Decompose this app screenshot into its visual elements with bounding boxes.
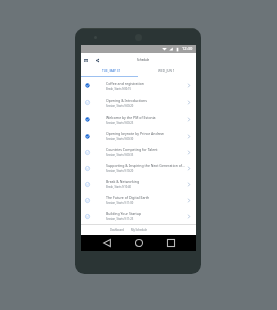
button[interactable]: Break & Networking [81,176,196,192]
staticText: Dashboard [110,228,124,232]
button[interactable]: Opening keynote by Prince Andrew [81,128,196,144]
staticText: Break, Starts 9:00:15 [106,87,131,91]
button[interactable]: Welcome by the PM of Estonia [81,111,196,128]
button[interactable]: Share [94,53,100,65]
staticText: Welcome by the PM of Estonia [106,115,156,120]
staticText: Schedule [137,58,150,62]
staticText: Countries Competing for Talent [106,147,158,152]
button[interactable]: WED, JUN 1 [138,65,196,76]
staticText: Session, Starts 9:10:20 [106,169,134,173]
staticText: Session, Starts 9:00:30 [106,137,134,141]
button[interactable]: TUE, MAY 31 [81,65,138,76]
button[interactable]: Building Your Startup [81,208,196,224]
button[interactable]: Coffee and registration [81,77,196,94]
staticText: Break, Starts 9:10:40 [106,185,131,189]
staticText: Opening & Introductions [106,98,147,103]
button[interactable]: Agenda view [82,53,90,65]
staticText: My Schedule [131,228,147,232]
button[interactable]: Home [131,235,147,251]
button[interactable]: My Schedule [127,225,151,235]
button[interactable]: Recent apps [163,235,179,251]
staticText: WED, JUN 1 [158,69,175,73]
staticText: 12:30 [182,46,193,52]
staticText: Building Your Startup [106,211,142,216]
button[interactable]: Dashboard [106,225,127,235]
button[interactable]: Opening & Introductions [81,94,196,111]
staticText: Break & Networking [106,179,140,184]
staticText: Session, Starts 9:11:00 [106,201,134,205]
staticText: Coffee and registration [106,81,144,86]
staticText: Session, Starts 9:00:35 [106,153,134,157]
button[interactable]: Back [99,235,115,251]
staticText: Opening keynote by Prince Andrew [106,131,164,136]
staticText: TUE, MAY 31 [102,69,121,73]
staticText: Supporting & Inspiring the Next Generati… [106,163,185,168]
button[interactable]: The Future of Digital Earth [81,192,196,208]
staticText: The Future of Digital Earth [106,195,150,200]
staticText: Session, Starts 9:11:25 [106,217,134,221]
button[interactable]: Countries Competing for Talent [81,144,196,160]
staticText: Session, Starts 9:00:25 [106,121,134,125]
staticText: Session, Starts 9:00:20 [106,104,134,108]
button[interactable]: Supporting & Inspiring the Next Generati… [81,160,196,176]
